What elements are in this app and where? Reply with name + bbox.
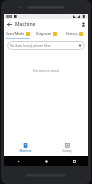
staticText: Machine [15, 21, 36, 28]
other: Filter [77, 43, 82, 48]
button[interactable]: No data found, please filter [7, 41, 85, 50]
staticText: Machine [19, 149, 32, 153]
button[interactable]: History [60, 29, 88, 38]
staticText: Survey [62, 149, 72, 153]
staticText: Entrances used [4, 68, 88, 73]
button[interactable]: Recent apps [60, 156, 88, 166]
staticText: Diagnose [36, 31, 52, 36]
staticText: Scan/Mode [6, 31, 25, 36]
button[interactable]: Diagnose [32, 29, 60, 38]
button[interactable]: Back [4, 19, 14, 29]
button[interactable]: Machine [4, 140, 46, 156]
button[interactable]: Home [32, 156, 60, 166]
staticText: History [66, 31, 78, 36]
button[interactable]: Back [4, 156, 32, 166]
button[interactable]: Account [78, 19, 88, 29]
button[interactable]: Scan/Mode [4, 29, 32, 38]
staticText: No data found, please filter [10, 44, 51, 48]
button[interactable]: Survey [46, 140, 88, 156]
